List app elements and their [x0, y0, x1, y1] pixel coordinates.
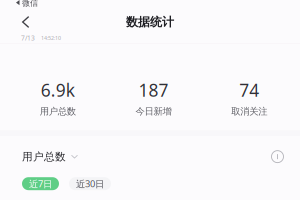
- staticText: 74: [239, 79, 259, 102]
- staticText: 近7日: [29, 177, 52, 190]
- staticText: 微信: [22, 0, 38, 8]
- staticText: 14:52:10: [41, 34, 61, 42]
- staticText: 用户总数: [22, 150, 66, 163]
- button[interactable]: 用户总数: [22, 146, 78, 167]
- staticText: 6.9k: [41, 79, 75, 102]
- button[interactable]: 近7日: [22, 177, 59, 190]
- button[interactable]: Info: [271, 150, 284, 163]
- staticText: 187: [138, 79, 168, 102]
- staticText: 数据统计: [126, 15, 174, 29]
- staticText: 7/13: [21, 34, 35, 42]
- button[interactable]: Back: [13, 11, 35, 31]
- button[interactable]: 近30日: [69, 177, 111, 190]
- staticText: 近30日: [76, 177, 104, 190]
- staticText: 取消关注: [231, 106, 267, 117]
- staticText: 今日新增: [135, 106, 171, 117]
- staticText: 用户总数: [40, 106, 76, 117]
